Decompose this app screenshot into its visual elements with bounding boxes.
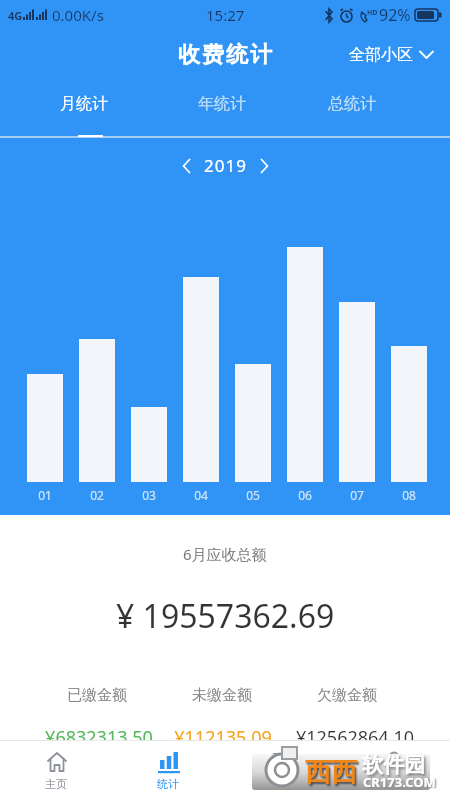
staticText: 未缴金额 — [132, 686, 312, 705]
staticText: 欠缴金额 — [257, 686, 437, 705]
staticText: 软件园 — [362, 752, 425, 778]
staticText: 我的 — [383, 777, 405, 791]
button[interactable]: 我的 — [337, 741, 450, 800]
button[interactable]: 月统计 — [60, 94, 108, 114]
staticText: 收费统计 — [177, 41, 273, 69]
staticText: 01 — [19, 487, 71, 503]
staticText: ¥ 19557362.69 — [116, 594, 335, 638]
button[interactable]: 总统计 — [328, 94, 376, 114]
staticText: 主页 — [45, 777, 67, 791]
button[interactable]: 统计 — [112, 741, 224, 800]
staticText: 05 — [227, 487, 279, 503]
staticText: 04 — [175, 487, 227, 503]
staticText: 消息 — [270, 777, 292, 791]
button[interactable]: 年统计 — [198, 94, 246, 114]
staticText: 15:27 — [206, 5, 245, 25]
staticText: 6月应收总额 — [183, 544, 267, 564]
staticText: 0.00K/s — [52, 5, 104, 25]
staticText: 06 — [279, 487, 331, 503]
button[interactable]: 主页 — [0, 741, 112, 800]
staticText: 02 — [71, 487, 123, 503]
staticText: HD — [367, 8, 378, 18]
staticText: 07 — [331, 487, 383, 503]
button[interactable]: 消息 — [224, 741, 337, 800]
staticText: 03 — [123, 487, 175, 503]
staticText: 统计 — [157, 777, 179, 791]
staticText: 已缴金额 — [7, 686, 187, 705]
staticText: ¥12562864.10 — [265, 725, 445, 750]
staticText: 4G — [8, 8, 23, 23]
staticText: 08 — [383, 487, 435, 503]
staticText: ¥112135.09 — [133, 725, 313, 750]
button[interactable]: 全部小区 — [349, 45, 434, 65]
staticText: 全部小区 — [349, 45, 413, 65]
button[interactable] — [260, 158, 269, 174]
staticText: 2019 — [204, 154, 247, 177]
staticText: 西西 — [305, 756, 357, 789]
staticText: CR173.COM — [363, 773, 436, 791]
button[interactable] — [182, 158, 191, 174]
staticText: 92% — [379, 4, 411, 26]
staticText: ¥6832313.50 — [9, 725, 189, 750]
